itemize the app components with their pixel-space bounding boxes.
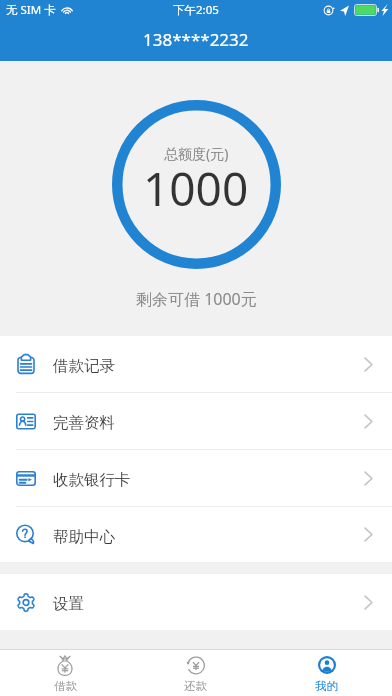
staticText: 借款 bbox=[54, 679, 77, 693]
staticText: 帮助中心 bbox=[53, 527, 115, 547]
button[interactable]: 设置 bbox=[0, 574, 392, 630]
staticText: 无 SIM 卡 bbox=[6, 2, 56, 18]
button[interactable]: 帮助中心 bbox=[0, 507, 392, 562]
staticText: 总额度(元) bbox=[164, 144, 229, 163]
staticText: 我的 bbox=[315, 679, 338, 693]
staticText: 1000 bbox=[143, 157, 249, 220]
staticText: 完善资料 bbox=[53, 413, 115, 433]
staticText: 设置 bbox=[53, 594, 84, 614]
staticText: 138****2232 bbox=[143, 28, 249, 51]
button[interactable]: 还款 bbox=[130, 650, 261, 696]
button[interactable]: 借款记录 bbox=[0, 336, 392, 392]
button[interactable]: 完善资料 bbox=[0, 393, 392, 449]
staticText: 借款记录 bbox=[53, 356, 115, 376]
staticText: 收款银行卡 bbox=[53, 470, 131, 490]
button[interactable]: 借款 bbox=[0, 650, 130, 696]
staticText: 还款 bbox=[184, 679, 207, 693]
staticText: 剩余可借 1000元 bbox=[136, 288, 257, 310]
button[interactable]: 收款银行卡 bbox=[0, 450, 392, 506]
button[interactable]: 我的 bbox=[261, 650, 392, 696]
staticText: 下午2:05 bbox=[173, 2, 219, 18]
